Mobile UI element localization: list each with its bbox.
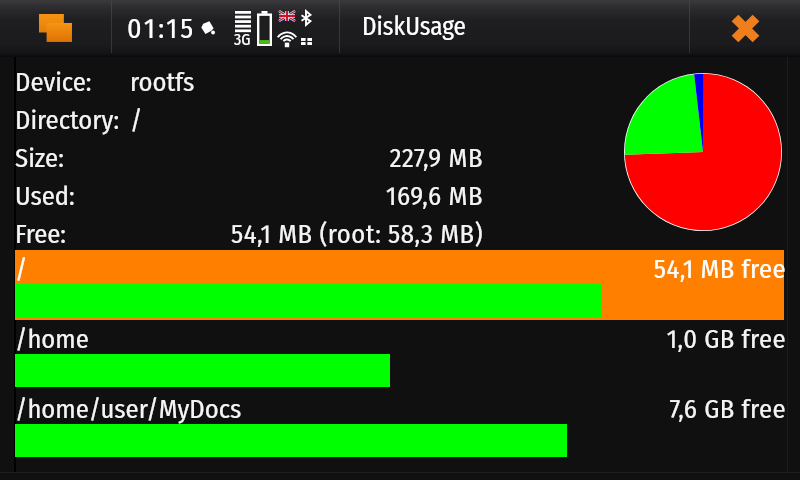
staticText: 1,0 GB free (19, 323, 786, 355)
button[interactable]: Close (690, 0, 800, 56)
button[interactable]: / (15, 250, 784, 320)
staticText: Directory: (15, 104, 120, 136)
staticText: rootfs (130, 66, 195, 98)
staticText: Used: (15, 180, 75, 212)
staticText: /home/user/MyDocs (15, 393, 242, 425)
staticText: / (130, 104, 143, 136)
staticText: / (15, 253, 28, 285)
button[interactable]: /home/user/MyDocs (15, 390, 784, 460)
staticText: Size: (15, 142, 64, 174)
staticText: 54,1 MB (root: 58,3 MB) (0, 218, 483, 250)
button[interactable]: Task switcher (0, 0, 111, 56)
button[interactable]: /home (15, 320, 784, 390)
staticText: 169,6 MB (0, 180, 483, 212)
button[interactable]: Status area (112, 0, 339, 56)
staticText: 7,6 GB free (19, 393, 786, 425)
staticText: Device: (15, 66, 92, 98)
staticText: DiskUsage (362, 12, 466, 42)
staticText: 01:15 (127, 12, 197, 46)
staticText: 3G (234, 30, 251, 49)
staticText: /home (15, 323, 89, 355)
staticText: 227,9 MB (0, 142, 483, 174)
staticText: Free: (15, 218, 66, 250)
staticText: 54,1 MB free (19, 253, 786, 285)
